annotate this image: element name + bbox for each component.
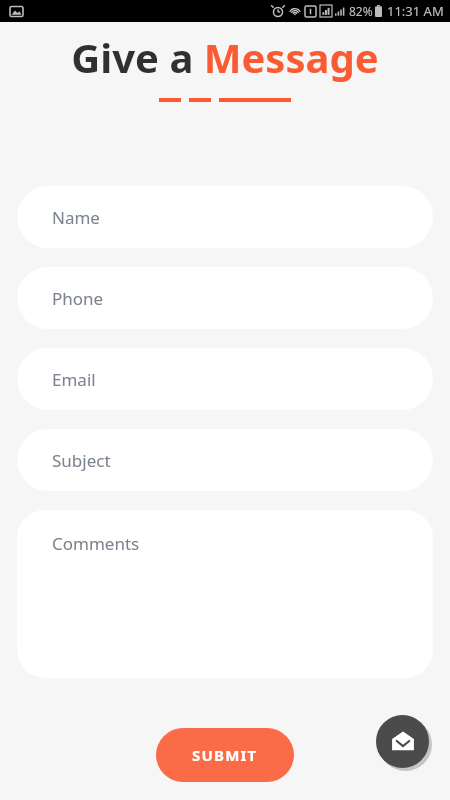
button[interactable]: Phone: [17, 267, 433, 329]
staticText: Name: [52, 206, 100, 229]
staticText: 82%: [349, 3, 373, 19]
button[interactable]: Comments: [17, 510, 433, 678]
button[interactable]: Open mail: [376, 715, 429, 768]
button[interactable]: SUBMIT: [156, 728, 294, 782]
staticText: Comments: [52, 532, 140, 555]
staticText: SUBMIT: [192, 745, 258, 765]
staticText: 11:31 AM: [387, 2, 444, 20]
staticText: Phone: [52, 287, 104, 310]
button[interactable]: Subject: [17, 429, 433, 491]
staticText: Subject: [52, 449, 111, 472]
staticText: Email: [52, 368, 96, 391]
staticText: Give a Message: [71, 30, 379, 84]
button[interactable]: Name: [17, 186, 433, 248]
button[interactable]: Email: [17, 348, 433, 410]
